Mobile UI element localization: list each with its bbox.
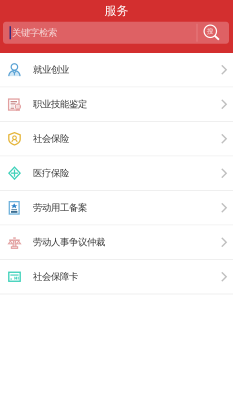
- staticText: 服务: [104, 3, 128, 18]
- staticText: 搜: [207, 27, 214, 35]
- staticText: 社会保险: [33, 133, 69, 144]
- button[interactable]: 医疗保险: [0, 156, 233, 191]
- staticText: 关键字检索: [12, 27, 57, 38]
- staticText: 社会保障卡: [33, 271, 78, 282]
- button[interactable]: 职业技能鉴定: [0, 87, 233, 122]
- button[interactable]: 劳动人事争议仲裁: [0, 225, 233, 260]
- button[interactable]: 社会保障卡: [0, 260, 233, 294]
- staticText: 劳动人事争议仲裁: [33, 236, 105, 248]
- staticText: 医疗保险: [33, 167, 69, 179]
- staticText: 劳动用工备案: [33, 202, 87, 213]
- button[interactable]: 社会保险: [0, 122, 233, 156]
- button[interactable]: 劳动用工备案: [0, 191, 233, 225]
- button[interactable]: 搜索: [197, 22, 229, 43]
- button[interactable]: 就业创业: [0, 53, 233, 87]
- staticText: 就业创业: [33, 64, 69, 75]
- staticText: 职业技能鉴定: [33, 98, 87, 110]
